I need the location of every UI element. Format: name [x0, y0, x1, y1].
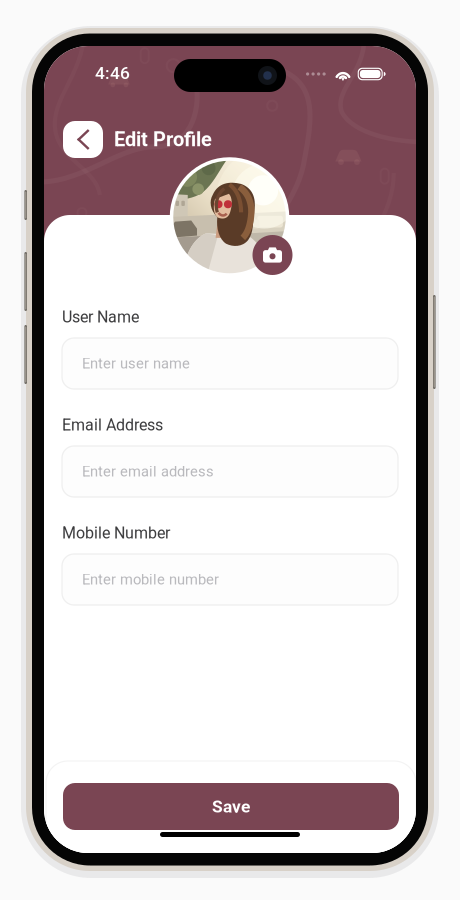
- staticText: Edit Profile: [114, 128, 212, 151]
- button[interactable]: Enter email address: [62, 446, 398, 497]
- staticText: 4:46: [95, 63, 130, 83]
- button[interactable]: Enter user name: [62, 338, 398, 389]
- staticText: Enter email address: [82, 463, 214, 480]
- staticText: Save: [212, 796, 250, 817]
- button[interactable]: Save: [63, 783, 399, 830]
- staticText: User Name: [62, 308, 139, 326]
- staticText: Enter mobile number: [82, 571, 219, 588]
- button[interactable]: Enter mobile number: [62, 554, 398, 605]
- staticText: Email Address: [62, 416, 163, 434]
- staticText: Enter user name: [82, 355, 190, 372]
- staticText: Mobile Number: [62, 524, 170, 542]
- button[interactable]: Back: [63, 121, 103, 158]
